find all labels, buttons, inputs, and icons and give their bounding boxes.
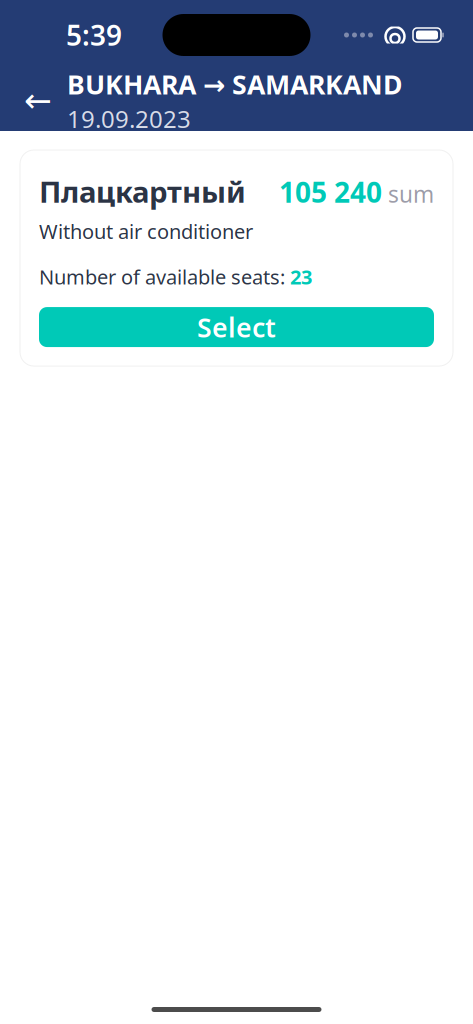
staticText: Without air conditioner — [39, 218, 253, 245]
staticText: 5:39 — [66, 16, 122, 54]
staticText: sum — [388, 179, 434, 209]
staticText: 105 240 — [279, 173, 382, 211]
staticText: 23 — [290, 263, 312, 290]
staticText: Number of available seats: — [39, 263, 290, 290]
staticText: 19.09.2023 — [67, 103, 191, 135]
button[interactable]: Back — [15, 72, 61, 128]
staticText: ← — [24, 82, 52, 119]
staticText: Select — [197, 309, 276, 345]
staticText: BUKHARA → SAMARKAND — [67, 66, 403, 102]
staticText: Плацкартный — [39, 172, 246, 211]
button[interactable]: Select — [39, 307, 434, 347]
